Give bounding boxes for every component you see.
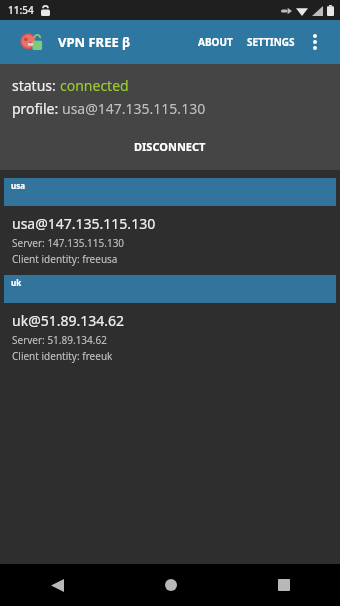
button[interactable]: DISCONNECT	[120, 133, 220, 160]
staticText: status:	[12, 76, 60, 95]
staticText: usa@147.135.115.130	[62, 99, 206, 118]
staticText: VPN FREE β	[58, 33, 131, 51]
button[interactable]: uk@51.89.134.62	[0, 303, 340, 372]
staticText: ABOUT	[198, 35, 233, 49]
staticText: connected	[60, 76, 129, 95]
staticText: DISCONNECT	[134, 139, 206, 154]
other: App icon	[20, 30, 44, 54]
staticText: SETTINGS	[247, 35, 295, 49]
staticText: Server: 147.135.115.130	[12, 236, 125, 250]
button[interactable]: ABOUT	[193, 27, 238, 57]
staticText: usa	[11, 180, 26, 191]
button[interactable]: usa@147.135.115.130	[0, 206, 340, 275]
staticText: Client identity: freeuk	[12, 349, 113, 363]
staticText: uk	[11, 277, 22, 288]
button[interactable]: usa	[4, 178, 336, 206]
button[interactable]: Home	[114, 564, 227, 606]
button[interactable]: Recent apps	[227, 564, 340, 606]
staticText: Client identity: freeusa	[12, 252, 118, 266]
staticText: Server: 51.89.134.62	[12, 333, 107, 347]
staticText: 11:54	[8, 3, 34, 17]
button[interactable]: SETTINGS	[242, 27, 300, 57]
staticText: profile:	[12, 99, 62, 118]
staticText: usa@147.135.115.130	[12, 214, 156, 233]
staticText: uk@51.89.134.62	[12, 311, 125, 330]
button[interactable]: uk	[4, 275, 336, 303]
button[interactable]: Back	[0, 564, 114, 606]
button[interactable]: More options	[300, 27, 330, 57]
